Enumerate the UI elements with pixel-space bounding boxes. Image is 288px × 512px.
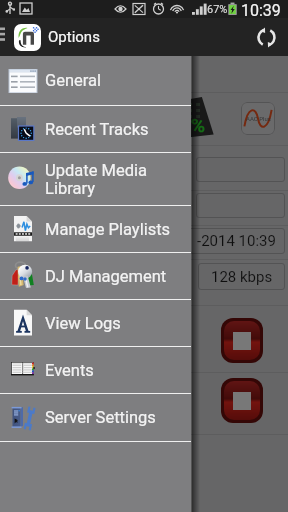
button[interactable]: Update Media Library (0, 153, 191, 205)
staticText: Manage Playlists (45, 220, 171, 239)
button[interactable]: Stop (221, 378, 263, 423)
staticText: 128 kbps (211, 268, 273, 286)
staticText: Events (45, 361, 94, 380)
staticText: 100% (159, 114, 205, 136)
button[interactable]: View Logs (0, 300, 191, 346)
button[interactable]: Events (0, 347, 191, 393)
button[interactable]: Manage Playlists (0, 206, 191, 252)
staticText: AAC Plus (246, 115, 271, 122)
staticText: Server Settings (45, 408, 156, 427)
staticText: DJ Management (45, 267, 167, 286)
staticText: 10:39 (241, 1, 281, 19)
button[interactable]: Refresh (244, 18, 288, 56)
staticText: 67% (207, 3, 228, 16)
button[interactable]: Open navigation drawer (0, 18, 12, 56)
staticText: Update Media Library (45, 161, 147, 198)
button[interactable]: DJ Management (0, 253, 191, 299)
button[interactable]: General (0, 56, 191, 105)
button[interactable]: Stop (221, 318, 263, 363)
button[interactable]: Server Settings (0, 394, 191, 441)
staticText: -2014 10:39 (197, 232, 276, 250)
staticText: View Logs (45, 314, 121, 333)
staticText: Recent Tracks (45, 120, 149, 139)
staticText: General (45, 71, 102, 90)
staticText: Options (48, 28, 100, 46)
button[interactable]: Recent Tracks (0, 106, 191, 152)
